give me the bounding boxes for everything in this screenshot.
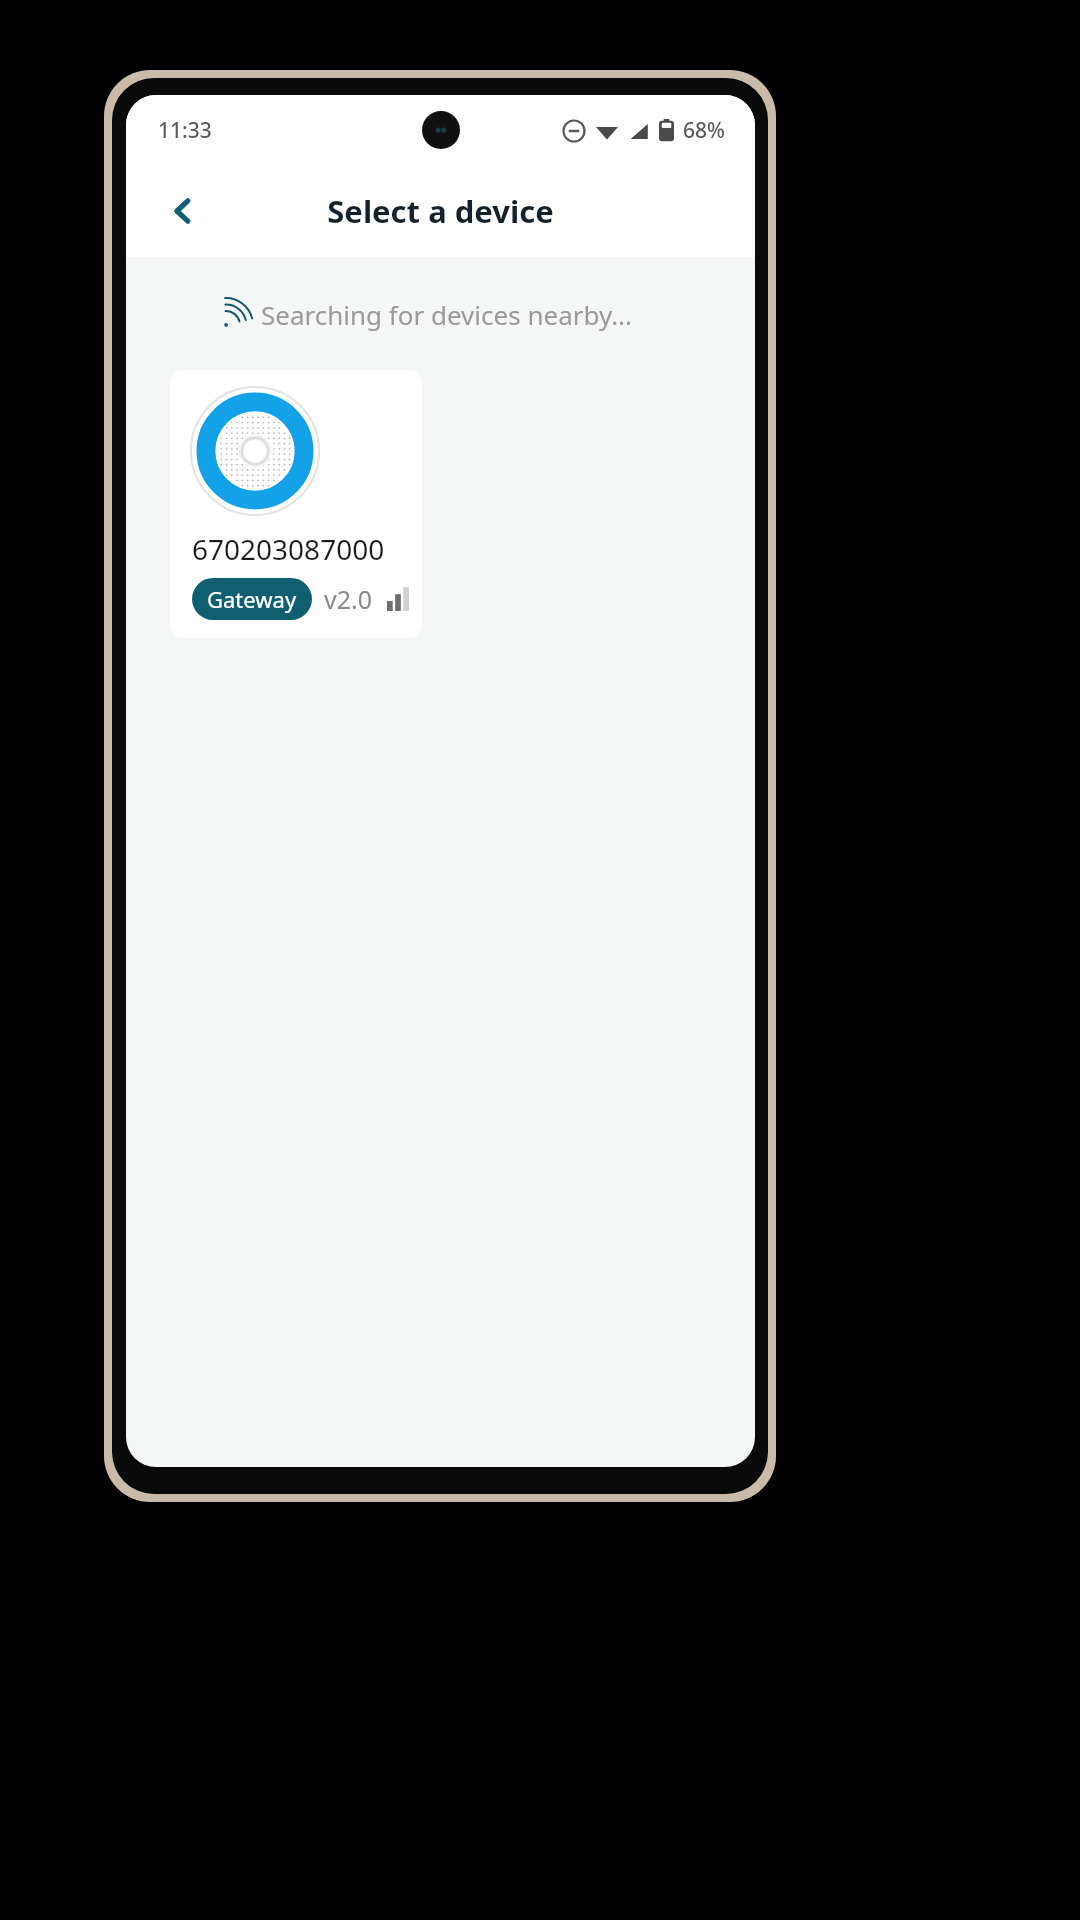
button[interactable]: Back xyxy=(154,182,212,240)
staticText: Select a device xyxy=(327,190,554,232)
staticText: 68% xyxy=(683,116,725,145)
staticText: Gateway xyxy=(207,584,297,614)
staticText: Searching for devices nearby... xyxy=(261,297,633,332)
button[interactable]: 670203087000 xyxy=(170,370,422,638)
staticText: v2.0 xyxy=(324,582,373,616)
staticText: 670203087000 xyxy=(192,530,385,568)
staticText: 11:33 xyxy=(158,116,212,145)
